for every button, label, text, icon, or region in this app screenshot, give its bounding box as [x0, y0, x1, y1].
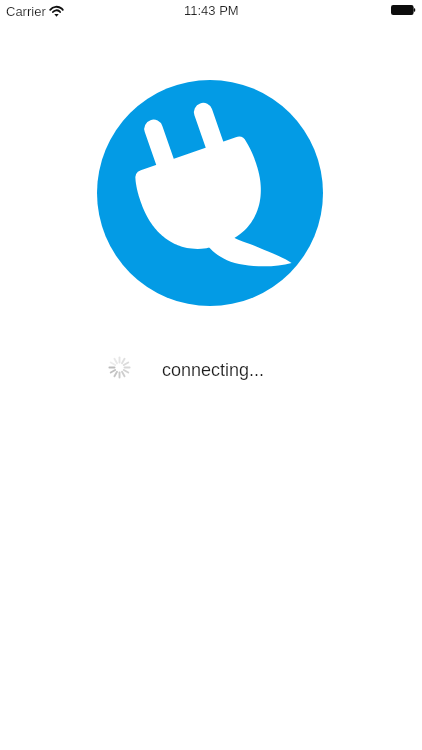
staticText: connecting...	[162, 360, 265, 380]
staticText: Carrier	[6, 4, 46, 19]
staticText: 11:43 PM	[184, 3, 239, 18]
